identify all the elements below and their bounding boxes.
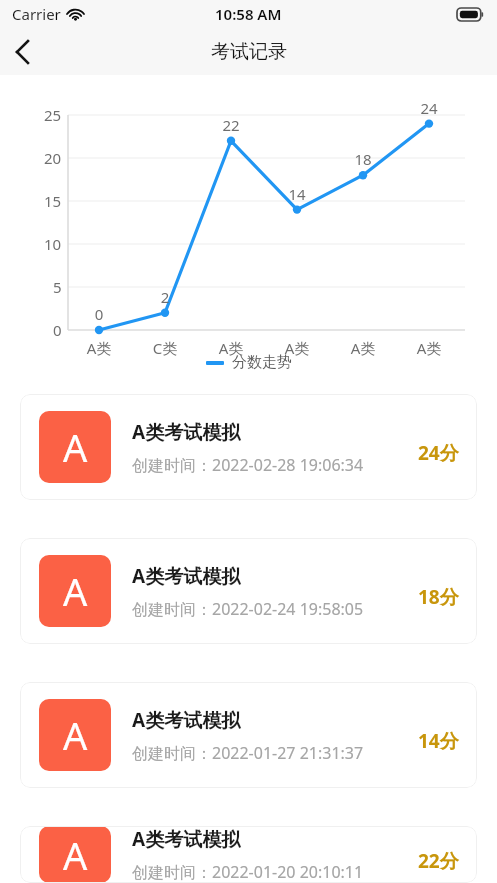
staticText: 18分 (418, 584, 459, 610)
staticText: 15 (44, 191, 62, 211)
staticText: A (63, 709, 88, 761)
staticText: 0 (53, 320, 62, 340)
staticText: 25 (44, 105, 62, 125)
staticText: A (63, 421, 88, 473)
staticText: 2 (145, 287, 185, 307)
staticText: 24分 (418, 440, 459, 466)
button[interactable]: Back (0, 28, 48, 75)
staticText: 24 (409, 98, 449, 118)
staticText: A类 (271, 338, 323, 358)
staticText: 20 (44, 148, 62, 168)
staticText: 0 (79, 304, 119, 324)
staticText: C类 (139, 338, 191, 358)
staticText: 14分 (418, 728, 459, 754)
staticText: A类 (205, 338, 257, 358)
staticText: 创建时间：2022-02-24 19:58:05 (132, 598, 364, 620)
staticText: A类考试模拟 (132, 826, 241, 852)
button[interactable]: A (20, 538, 477, 644)
button[interactable]: A (20, 394, 477, 500)
staticText: 5 (53, 277, 62, 297)
staticText: 创建时间：2022-01-20 20:10:11 (132, 861, 364, 883)
staticText: 创建时间：2022-01-27 21:31:37 (132, 742, 364, 764)
staticText: 10:58 AM (215, 4, 282, 24)
staticText: 分数走势 (232, 353, 292, 372)
staticText: 考试记录 (211, 40, 287, 64)
staticText: A类 (73, 338, 125, 358)
staticText: 22 (211, 115, 251, 135)
staticText: 创建时间：2022-02-28 19:06:34 (132, 454, 364, 476)
button[interactable]: A (20, 682, 477, 788)
staticText: A类考试模拟 (132, 563, 241, 589)
staticText: 10 (44, 234, 62, 254)
button[interactable]: A (20, 826, 477, 883)
staticText: 18 (343, 149, 383, 169)
staticText: A类 (337, 338, 389, 358)
staticText: 14 (277, 184, 317, 204)
staticText: A类考试模拟 (132, 419, 241, 445)
staticText: Carrier (12, 4, 61, 24)
staticText: A (63, 565, 88, 617)
staticText: A类 (403, 338, 455, 358)
staticText: 22分 (418, 848, 459, 874)
staticText: A类考试模拟 (132, 707, 241, 733)
staticText: A (63, 829, 88, 881)
